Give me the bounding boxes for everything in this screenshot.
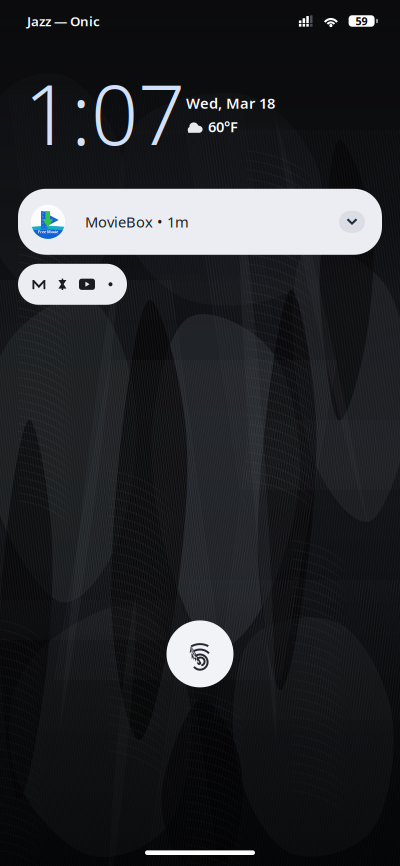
staticText: 59 (356, 14, 368, 28)
button[interactable]: Unlock with fingerprint (166, 620, 233, 687)
button[interactable]: App shortcut (57, 277, 68, 292)
staticText: Wed, Mar 18 (186, 93, 275, 113)
button[interactable]: YouTube (79, 277, 95, 292)
staticText: Jazz — Onic (27, 12, 100, 30)
button[interactable]: Free Movie (18, 189, 382, 255)
staticText: MovieBox • 1m (85, 212, 189, 231)
staticText: 1:07 (24, 58, 185, 168)
staticText: Free Movie (38, 229, 58, 234)
staticText: 60°F (208, 117, 238, 136)
button[interactable]: Gmail (32, 277, 46, 292)
button[interactable]: More shortcuts (106, 277, 115, 292)
